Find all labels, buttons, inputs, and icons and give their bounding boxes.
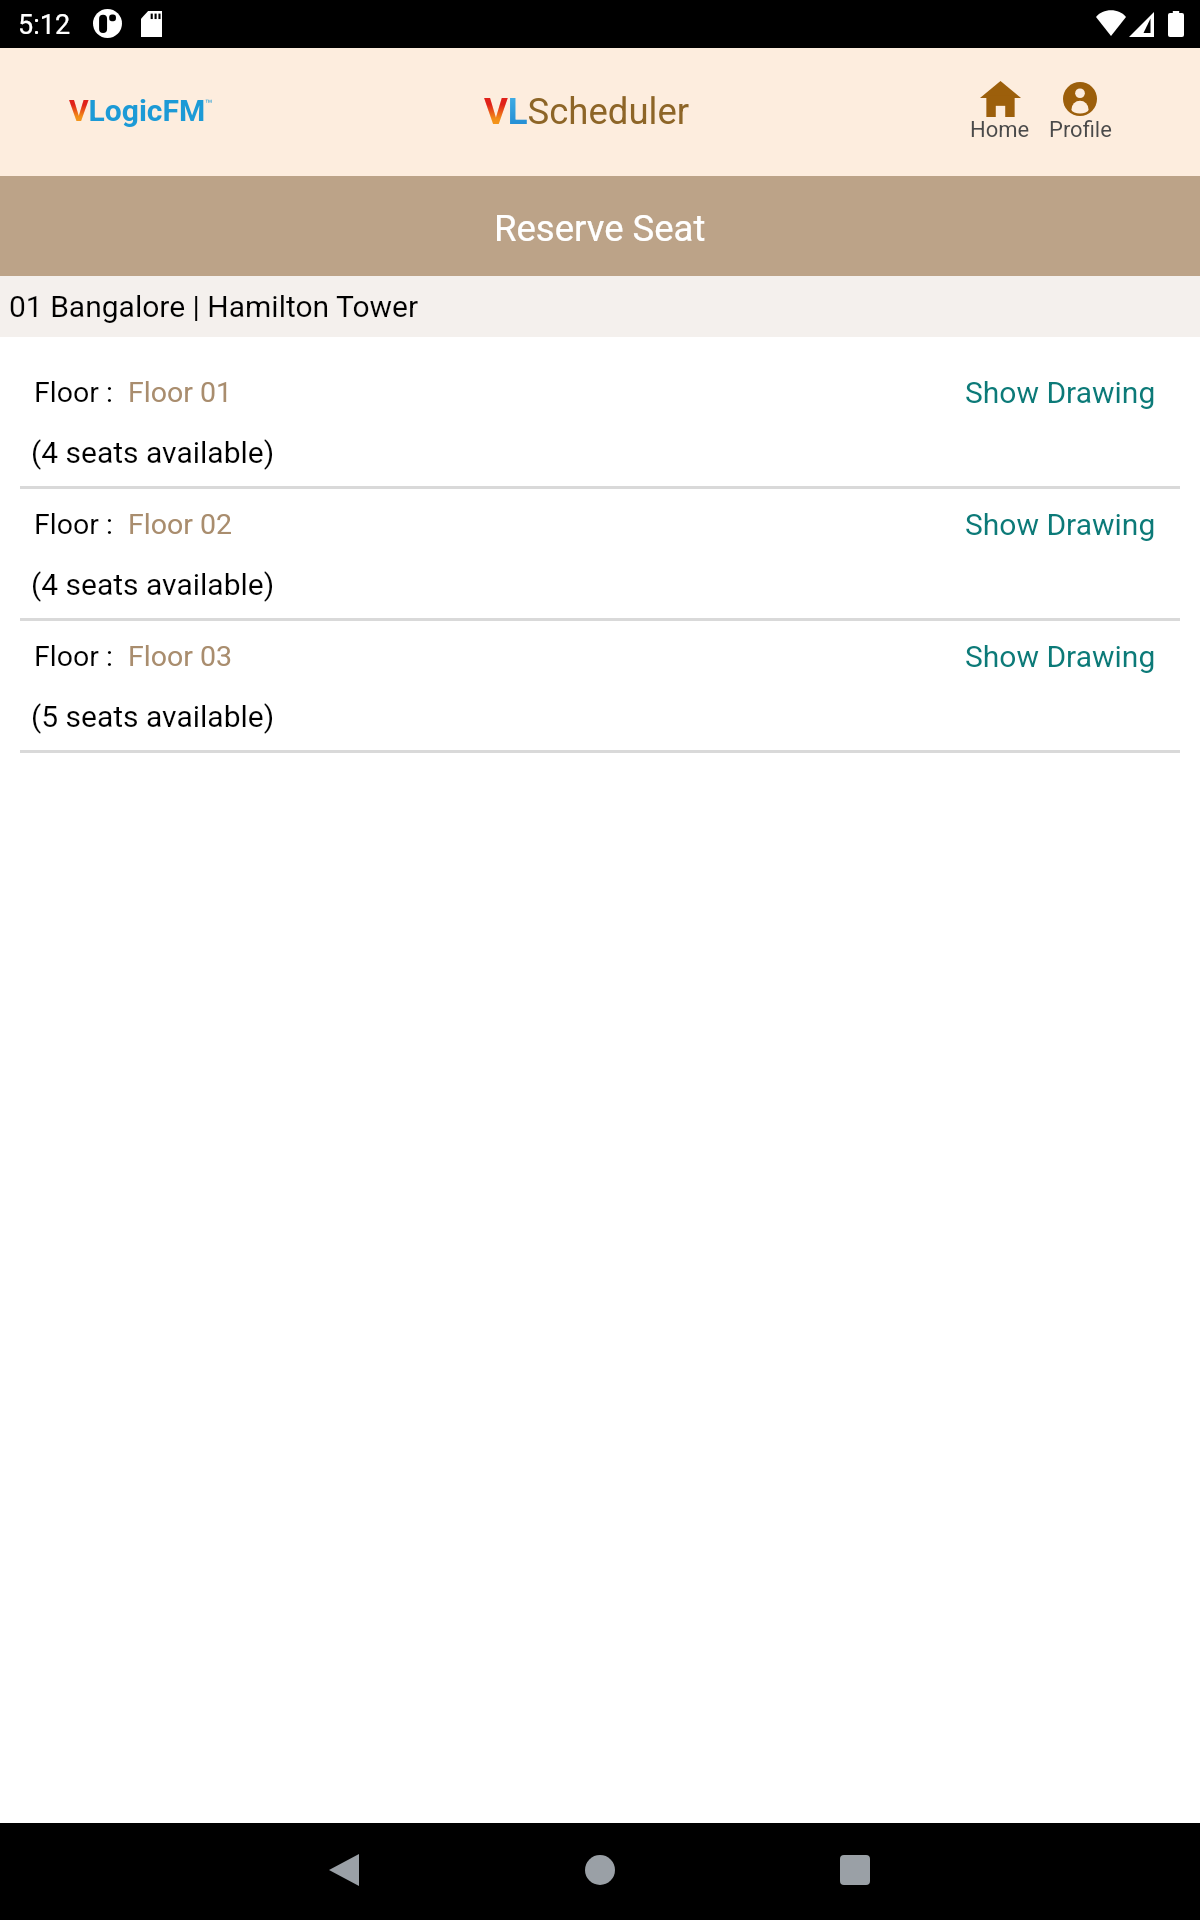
staticText: Floor : [34, 376, 113, 409]
staticText: Show Drawing [965, 639, 1156, 674]
staticText: VLogicFM [69, 93, 206, 128]
staticText: Floor : [34, 508, 113, 541]
staticText: Reserve Seat [494, 207, 706, 250]
staticText: (4 seats available) [31, 435, 275, 470]
staticText: (5 seats available) [31, 699, 275, 734]
button[interactable]: Back [314, 1840, 374, 1900]
staticText: (4 seats available) [31, 567, 275, 602]
staticText: Profile [1049, 117, 1112, 143]
button[interactable]: Show Drawing [965, 507, 1156, 542]
button[interactable]: Show Drawing [965, 375, 1156, 410]
staticText: VLScheduler [484, 90, 690, 133]
button[interactable]: Recents [825, 1840, 885, 1900]
staticText: ™ [205, 97, 213, 111]
button[interactable]: Floor : [0, 620, 1200, 752]
staticText: 01 Bangalore | Hamilton Tower [9, 289, 419, 324]
button[interactable]: Floor : [0, 488, 1200, 620]
staticText: Floor : [34, 640, 113, 673]
staticText: Floor 01 [128, 376, 232, 409]
button[interactable]: Profile [1044, 81, 1116, 143]
staticText: 5:12 [18, 9, 71, 41]
staticText: Show Drawing [965, 375, 1156, 410]
button[interactable]: Floor : [0, 356, 1200, 488]
button[interactable]: Home [570, 1840, 630, 1900]
staticText: Home [970, 117, 1030, 143]
button[interactable]: Home [964, 81, 1036, 143]
button[interactable]: Show Drawing [965, 639, 1156, 674]
staticText: Floor 02 [128, 508, 232, 541]
staticText: Floor 03 [128, 640, 232, 673]
staticText: Show Drawing [965, 507, 1156, 542]
